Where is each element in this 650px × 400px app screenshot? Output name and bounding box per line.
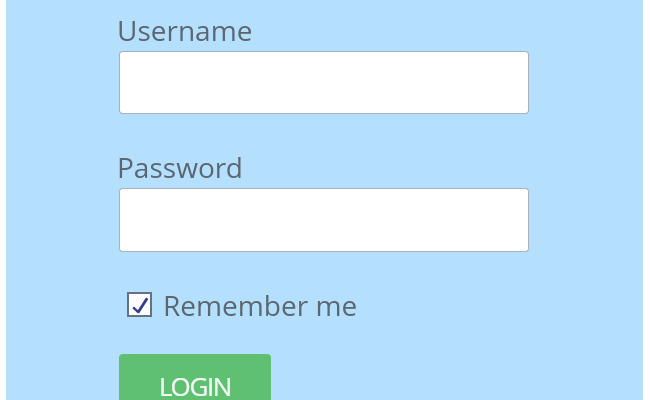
button[interactable]: Remember me checkbox, checked — [127, 292, 152, 317]
staticText: Username — [117, 11, 253, 49]
button[interactable]: Remember me checkbox, checked — [119, 286, 359, 322]
staticText: Remember me — [163, 286, 358, 322]
button[interactable]: LOGIN — [119, 354, 271, 400]
staticText: Password — [117, 148, 243, 186]
staticText: LOGIN — [159, 368, 232, 400]
